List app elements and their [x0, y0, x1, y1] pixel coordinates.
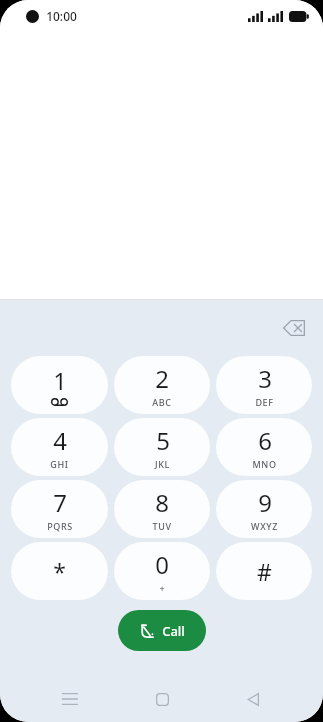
button[interactable]: Backspace [277, 314, 311, 342]
staticText: GHI [50, 458, 69, 470]
button[interactable]: 0 [114, 542, 210, 600]
staticText: 4 [53, 424, 67, 457]
button[interactable]: 7 [11, 480, 108, 538]
staticText: 9 [258, 486, 272, 519]
button[interactable]: * [11, 542, 108, 600]
button[interactable]: 2 [114, 356, 210, 414]
button[interactable]: # [216, 542, 312, 600]
staticText: 8 [155, 486, 169, 519]
staticText: TUV [152, 520, 172, 532]
staticText: PQRS [47, 520, 73, 532]
button[interactable]: 6 [216, 418, 312, 476]
staticText: ABC [152, 396, 172, 408]
staticText: + [159, 582, 165, 594]
button[interactable]: 4 [11, 418, 108, 476]
staticText: 5 [156, 424, 170, 457]
button[interactable]: 8 [114, 480, 210, 538]
staticText: 3 [258, 362, 272, 395]
staticText: # [257, 556, 272, 587]
staticText: JKL [155, 458, 170, 470]
staticText: 7 [53, 486, 67, 519]
button[interactable]: 5 [114, 418, 210, 476]
staticText: 0 [155, 548, 169, 581]
staticText: Call [162, 622, 185, 640]
button[interactable]: Back [232, 678, 274, 720]
button[interactable]: Recents [49, 678, 91, 720]
button[interactable]: Home [141, 678, 183, 720]
button[interactable]: 1 [11, 356, 108, 414]
button[interactable]: 9 [216, 480, 312, 538]
staticText: WXYZ [251, 520, 278, 532]
button[interactable]: 3 [216, 356, 312, 414]
staticText: 10:00 [46, 8, 77, 24]
button[interactable]: Call [118, 610, 206, 651]
staticText: 6 [258, 424, 272, 457]
staticText: 1 [53, 364, 67, 397]
staticText: 2 [155, 362, 169, 395]
staticText: * [53, 556, 66, 587]
staticText: DEF [255, 396, 274, 408]
staticText: MNO [252, 458, 277, 470]
